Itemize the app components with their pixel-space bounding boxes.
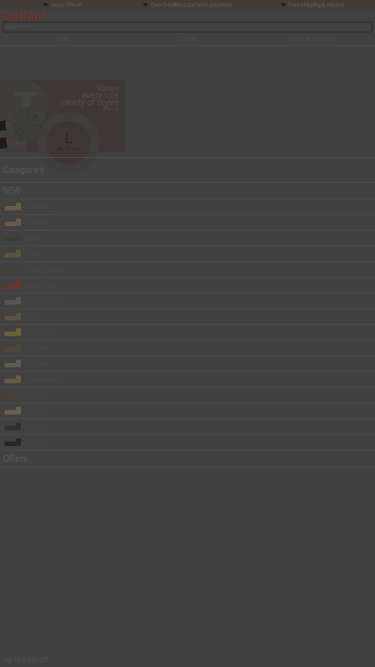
- button[interactable]: beliani: [0, 6, 49, 24]
- button[interactable]: Home Accessories: [250, 32, 375, 45]
- staticText: Categories: [3, 165, 44, 175]
- staticText: variety of styles: [60, 97, 119, 107]
- staticText: every size: [82, 90, 119, 100]
- button[interactable]: L: [0, 80, 125, 152]
- button[interactable]: Textiles: [0, 403, 375, 418]
- button[interactable]: Over 5 million satisfied customers: [125, 0, 250, 9]
- staticText: beliani: [3, 7, 45, 23]
- button[interactable]: Bathroom: [0, 278, 375, 293]
- button[interactable]: Search for...: [0, 22, 375, 32]
- button[interactable]: Lighting: [0, 215, 375, 230]
- staticText: Vases: [97, 83, 119, 94]
- staticText: NEW: [3, 185, 20, 196]
- staticText: Up to 64% off: [3, 655, 48, 664]
- staticText: Shop now: [103, 106, 119, 111]
- button[interactable]: Office: [0, 309, 375, 324]
- button[interactable]: Free shipping & returns: [250, 0, 375, 9]
- button[interactable]: Kitchen: [0, 435, 375, 450]
- staticText: Free shipping & returns: [288, 1, 344, 8]
- button[interactable]: Furniture: [0, 199, 375, 214]
- staticText: Up to 70% off: [50, 1, 82, 8]
- staticText: 46-70 cm: [57, 145, 80, 152]
- button[interactable]: Up to 70% off: [0, 0, 125, 9]
- staticText: L: [65, 128, 73, 147]
- button[interactable]: Sofas: [0, 246, 375, 261]
- staticText: Over 5 million satisfied customers: [150, 1, 232, 8]
- button[interactable]: Decorations: [0, 372, 375, 387]
- button[interactable]: Living room: [0, 294, 375, 308]
- staticText: Offers: [3, 453, 27, 464]
- button[interactable]: Kids room: [0, 325, 375, 340]
- button[interactable]: Garden: [0, 356, 375, 371]
